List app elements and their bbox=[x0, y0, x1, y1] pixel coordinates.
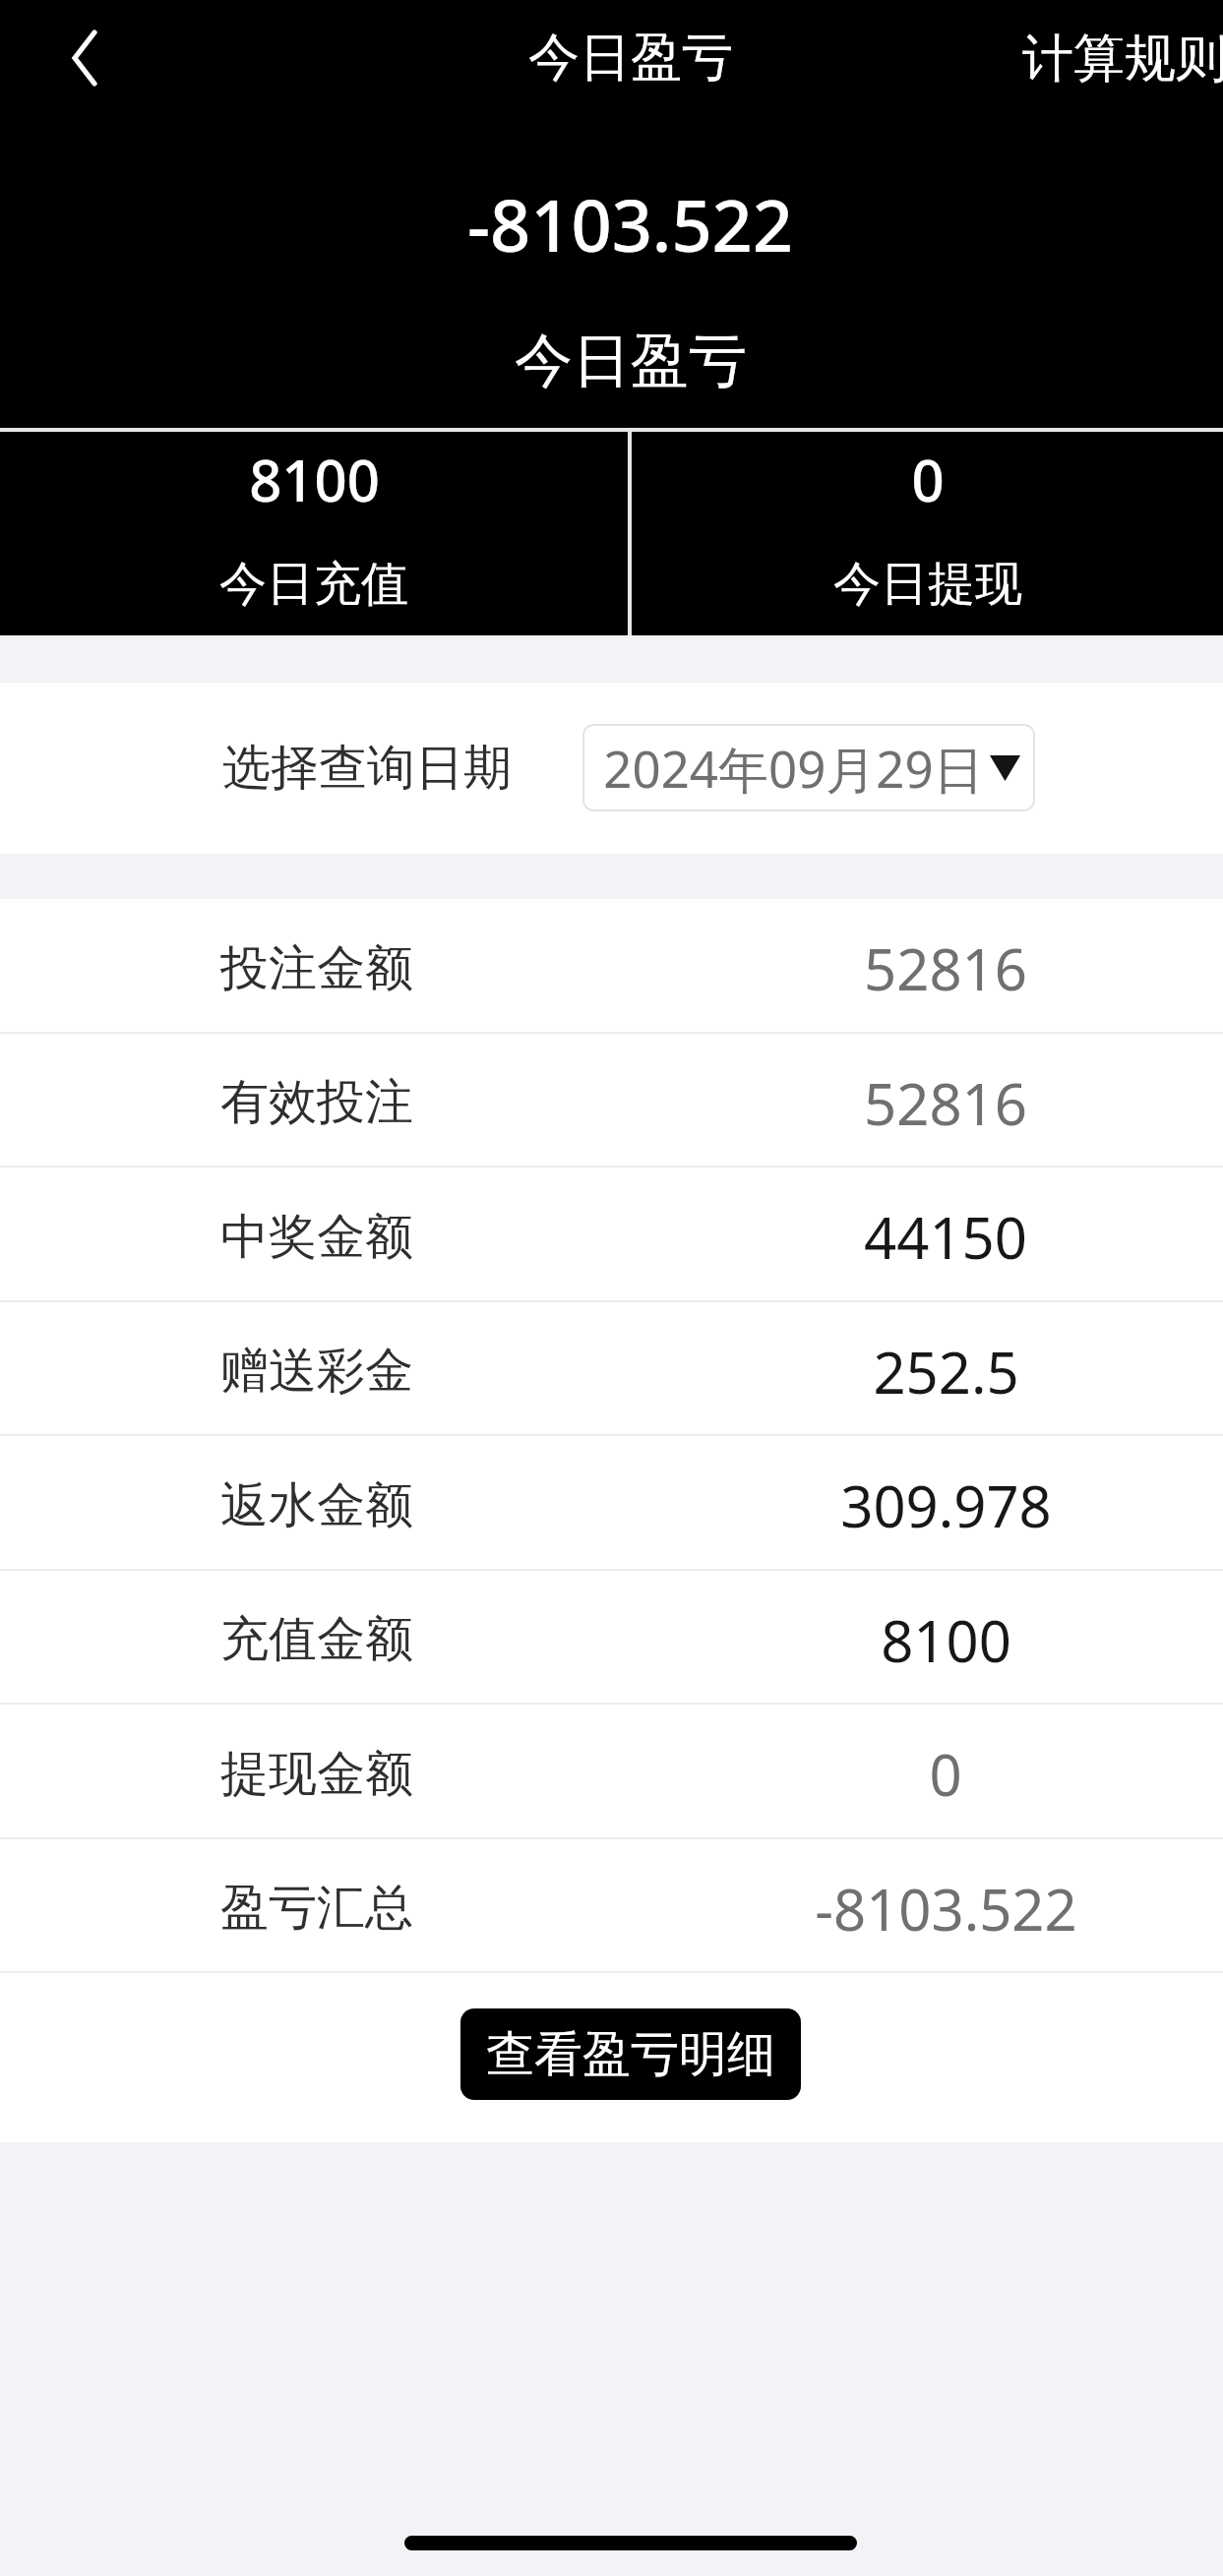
button[interactable]: 返水金额 bbox=[0, 1436, 1223, 1569]
staticText: 今日盈亏 bbox=[515, 325, 747, 397]
staticText: 中奖金额 bbox=[220, 1207, 413, 1268]
button[interactable]: 有效投注 bbox=[0, 1034, 1223, 1166]
button[interactable]: 赠送彩金 bbox=[0, 1302, 1223, 1434]
staticText: 0 bbox=[911, 441, 945, 518]
staticText: 52816 bbox=[864, 929, 1027, 1007]
staticText: 计算规则 bbox=[1022, 27, 1223, 91]
staticText: 赠送彩金 bbox=[220, 1341, 413, 1402]
staticText: 投注金额 bbox=[220, 938, 413, 999]
button[interactable]: 提现金额 bbox=[0, 1705, 1223, 1837]
button[interactable]: 投注金额 bbox=[0, 899, 1223, 1032]
staticText: 309.978 bbox=[840, 1467, 1052, 1544]
staticText: 今日提现 bbox=[833, 555, 1022, 614]
button[interactable]: 中奖金额 bbox=[0, 1168, 1223, 1300]
button[interactable]: 0 bbox=[632, 432, 1223, 635]
button[interactable]: 充值金额 bbox=[0, 1571, 1223, 1703]
staticText: 今日充值 bbox=[219, 555, 408, 614]
staticText: 返水金额 bbox=[220, 1475, 413, 1536]
staticText: 有效投注 bbox=[220, 1072, 413, 1133]
staticText: 44150 bbox=[864, 1198, 1027, 1276]
staticText: 2024年09月29日 bbox=[603, 734, 984, 803]
staticText: 充值金额 bbox=[220, 1609, 413, 1670]
button[interactable]: 2024年09月29日 bbox=[582, 724, 1035, 811]
staticText: 252.5 bbox=[873, 1333, 1019, 1410]
button[interactable]: 8100 bbox=[0, 432, 628, 635]
staticText: 查看盈亏明细 bbox=[486, 2024, 775, 2085]
staticText: 提现金额 bbox=[220, 1744, 413, 1805]
staticText: 8100 bbox=[881, 1601, 1011, 1679]
staticText: 选择查询日期 bbox=[222, 738, 512, 799]
button[interactable]: 盈亏汇总 bbox=[0, 1839, 1223, 1971]
staticText: 8100 bbox=[249, 441, 380, 518]
staticText: 52816 bbox=[864, 1064, 1027, 1142]
button[interactable]: Back bbox=[31, 4, 139, 112]
button[interactable]: 查看盈亏明细 bbox=[460, 2008, 801, 2100]
staticText: 今日盈亏 bbox=[528, 26, 733, 90]
staticText: -8103.522 bbox=[815, 1870, 1077, 1947]
staticText: -8103.522 bbox=[467, 176, 793, 272]
staticText: 盈亏汇总 bbox=[220, 1878, 413, 1939]
staticText: 0 bbox=[929, 1735, 962, 1813]
button[interactable]: 计算规则 bbox=[1022, 17, 1223, 101]
